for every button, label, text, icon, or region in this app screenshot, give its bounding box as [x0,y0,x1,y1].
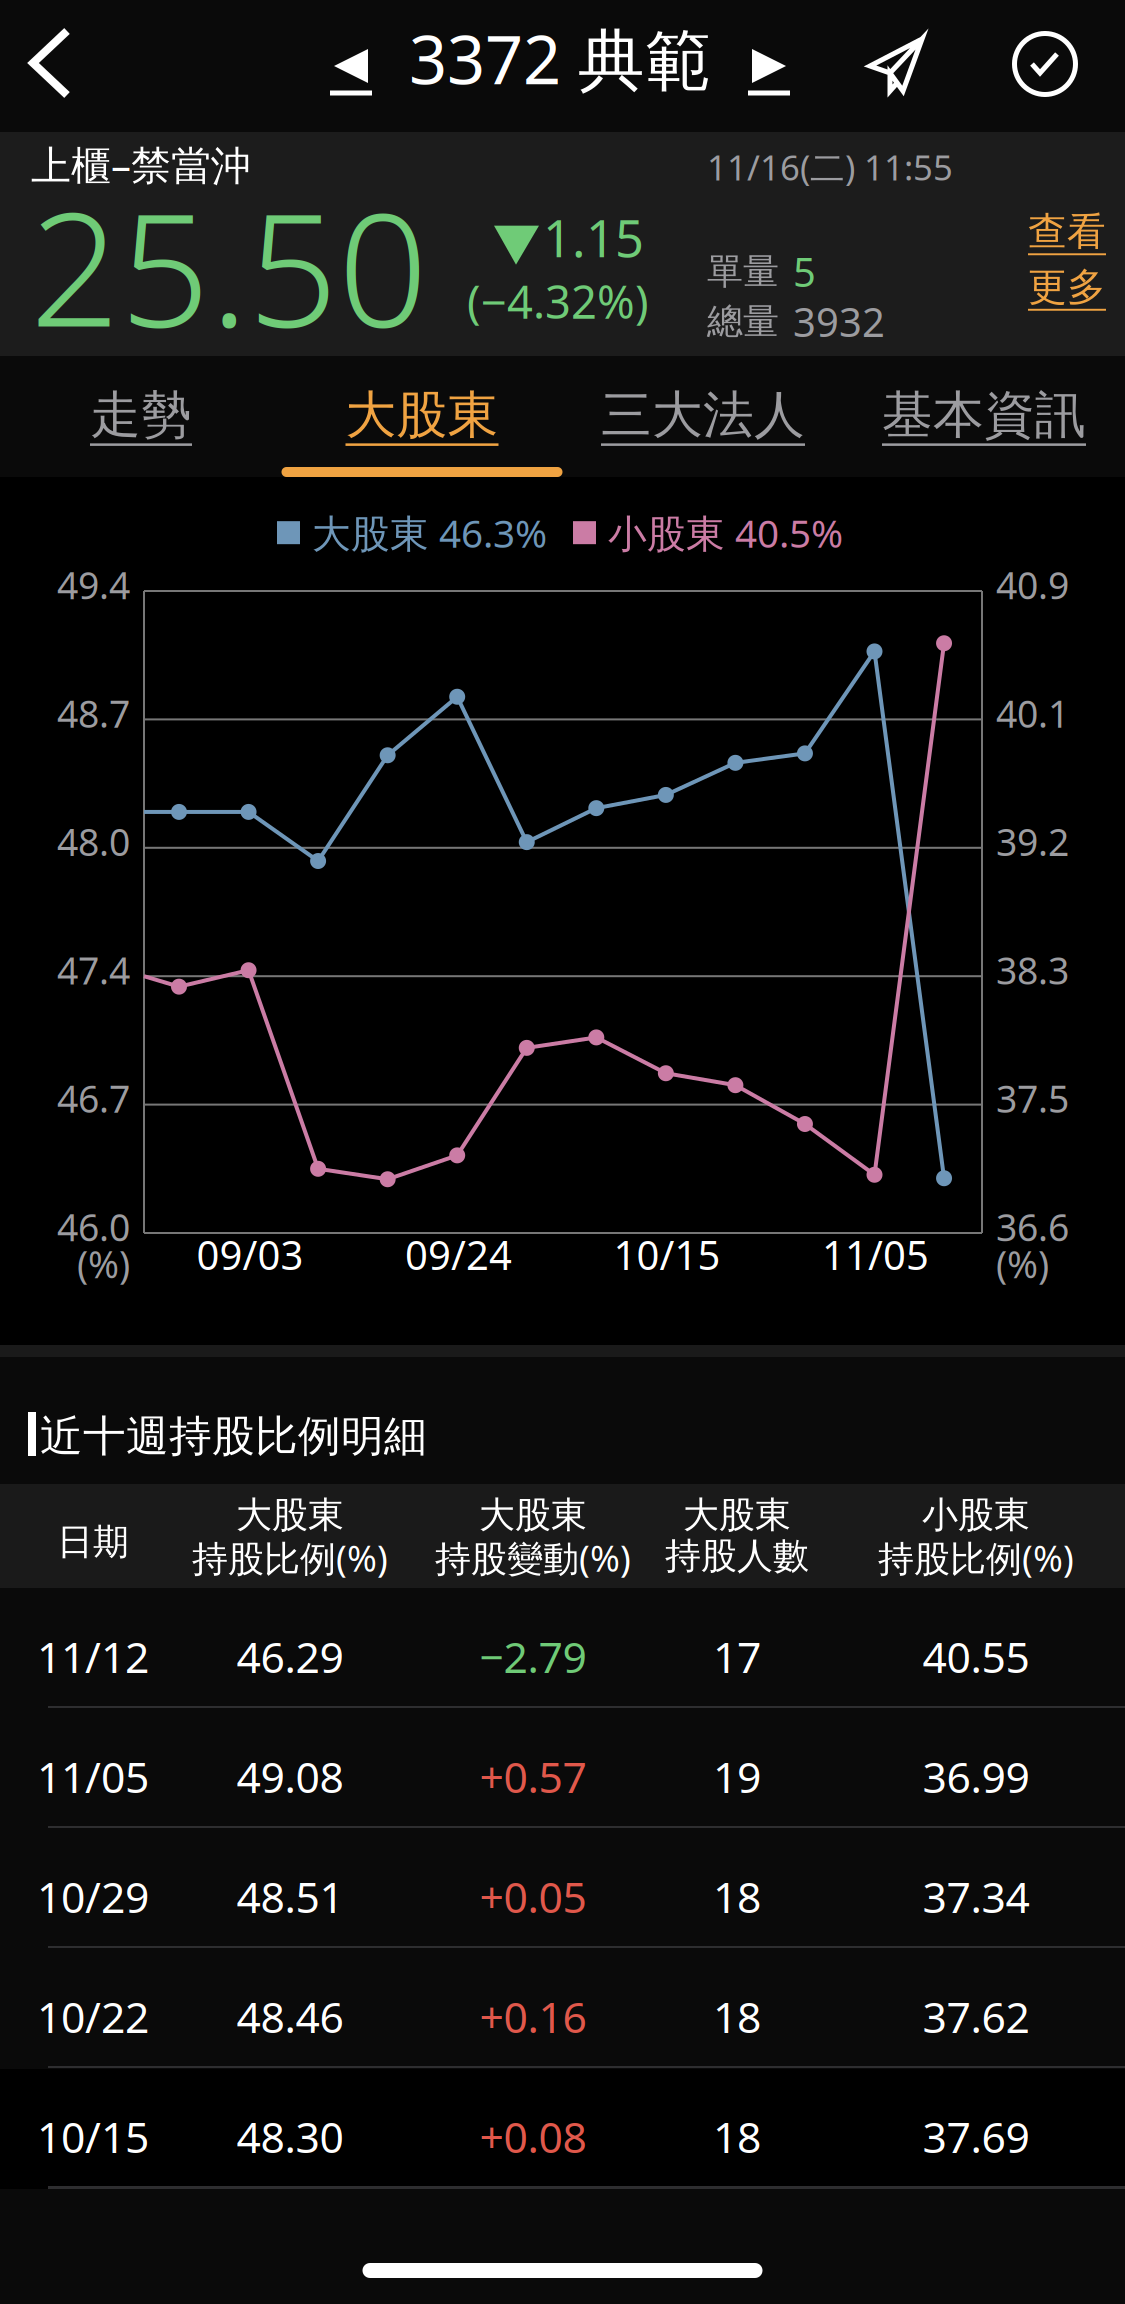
button[interactable]: 三大法人 [562,356,843,477]
staticText: 11/05 [37,1748,149,1805]
staticText: 大股東 [683,1493,791,1537]
staticText: 更多 [1028,263,1106,311]
staticText: 11/05 [822,1228,929,1281]
staticText: 11/16(二) 11:55 [707,144,953,190]
staticText: 37.5 [996,1074,1069,1123]
button[interactable]: 基本資訊 [843,356,1124,477]
staticText: 18 [713,2108,761,2165]
staticText: 17 [713,1628,761,1685]
staticText: 大股東 46.3% [312,507,547,558]
staticText: 40.1 [996,688,1069,738]
staticText: +0.57 [479,1748,586,1805]
button[interactable]: 大股東 [281,356,562,477]
staticText: 25.50 [30,161,428,370]
button[interactable]: Share [864,33,928,97]
staticText: 36.99 [922,1748,1029,1805]
staticText: 09/24 [405,1228,512,1281]
staticText: 小股東 40.5% [608,507,843,558]
button[interactable]: 走勢 [0,356,281,477]
staticText: 持股比例(%) [192,1534,388,1582]
staticText: 40.9 [996,560,1069,610]
staticText: 18 [713,1868,761,1925]
button[interactable]: Back [13,17,97,105]
staticText: 48.46 [236,1988,343,2045]
staticText: 37.34 [922,1868,1029,1925]
staticText: 持股比例(%) [878,1534,1074,1582]
staticText: −2.79 [479,1628,586,1685]
staticText: 1.15 [543,204,644,271]
staticText: 37.69 [922,2108,1029,2165]
staticText: 小股東 [922,1493,1030,1537]
staticText: 39.2 [996,817,1069,866]
staticText: 11/12 [37,1628,149,1685]
staticText: 5 [793,245,816,298]
staticText: 基本資訊 [882,384,1086,446]
staticText: 19 [713,1748,761,1805]
staticText: 上櫃–禁當沖 [31,138,251,191]
staticText: +0.16 [479,1988,586,2045]
staticText: 10/29 [37,1868,149,1925]
staticText: 持股人數 [665,1534,809,1578]
staticText: 日期 [57,1520,129,1564]
staticText: 大股東 [236,1493,344,1537]
button[interactable]: Add to watchlist [1014,33,1076,95]
staticText: 10/15 [613,1228,720,1281]
staticText: 40.55 [922,1628,1029,1685]
staticText: 36.6 [996,1202,1069,1252]
staticText: 09/03 [196,1228,303,1281]
staticText: 46.0 [57,1202,130,1252]
staticText: 48.7 [57,688,130,738]
staticText: 10/22 [37,1988,149,2045]
button[interactable]: 查看 [1028,208,1106,311]
staticText: 總量 [707,299,779,344]
staticText: 大股東 [345,384,498,446]
staticText: 持股變動(%) [435,1534,631,1582]
staticText: 近十週持股比例明細 [40,1410,427,1462]
staticText: (%) [77,1239,130,1289]
staticText: 48.30 [236,2108,343,2165]
staticText: 47.4 [57,945,130,995]
staticText: 18 [713,1988,761,2045]
staticText: +0.08 [479,2108,586,2165]
staticText: 三大法人 [601,384,805,446]
staticText: 走勢 [90,384,192,446]
staticText: 46.29 [236,1628,343,1685]
staticText: 查看 [1028,208,1106,255]
staticText: (−4.32%) [467,271,649,331]
staticText: 48.51 [236,1868,343,1925]
staticText: 3932 [793,295,885,348]
staticText: (%) [996,1239,1049,1289]
staticText: 37.62 [922,1988,1029,2045]
staticText: +0.05 [479,1868,586,1925]
button[interactable]: Previous stock [330,46,374,98]
staticText: 46.7 [57,1074,130,1123]
staticText: 38.3 [996,945,1069,995]
staticText: 單量 [707,249,779,294]
button[interactable]: Next stock [746,46,790,98]
staticText: 49.08 [236,1748,343,1805]
staticText: 49.4 [57,560,130,610]
staticText: 3372 典範 [409,14,712,102]
staticText: 大股東 [479,1493,587,1537]
staticText: 48.0 [57,817,130,866]
staticText: 10/15 [37,2108,149,2165]
